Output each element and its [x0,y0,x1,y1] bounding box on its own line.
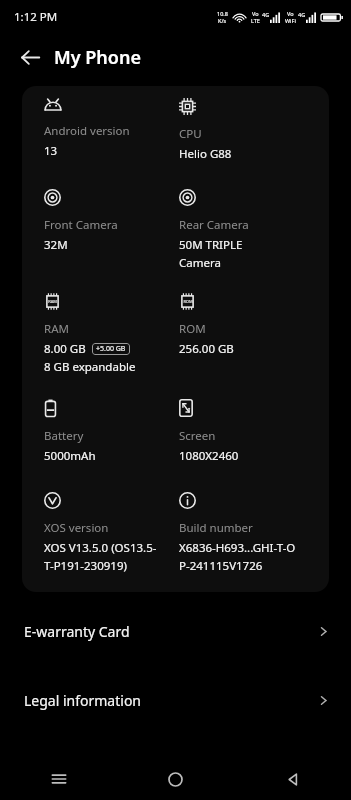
staticText: Front Camera [44,217,118,233]
staticText: Vo [287,10,294,17]
staticText: LTE [251,17,260,24]
staticText: P-241115V1726 [179,558,263,574]
staticText: Helio G88 [179,146,232,162]
staticText: 1:12 PM [14,9,58,25]
staticText: T-P191-230919) [44,558,127,574]
staticText: 13 [44,143,58,159]
staticText: XOS version [44,520,109,536]
staticText: Vo [252,10,259,17]
staticText: Build number [179,520,253,536]
staticText: 1080X2460 [179,448,239,464]
staticText: Legal information [24,691,142,710]
button[interactable]: Legal information [0,683,351,717]
staticText: Android version [44,123,130,139]
staticText: +5.00 GB [96,344,126,354]
staticText: 8 GB expandable [44,359,136,375]
staticText: RAM [48,299,57,304]
staticText: Screen [179,428,216,444]
staticText: K/s [218,17,227,24]
staticText: ROM [179,321,206,337]
staticText: 4G [298,11,306,18]
staticText: E-warranty Card [24,622,130,641]
staticText: RAM [44,321,69,337]
staticText: My Phone [54,45,141,70]
button[interactable]: Back [234,758,351,800]
button[interactable]: Home [117,758,234,800]
staticText: Battery [44,428,84,444]
staticText: 10.8 [217,10,228,17]
staticText: X6836-H693...GHI-T-O [179,540,296,556]
staticText: Rear Camera [179,217,249,233]
staticText: 50M TRIPLE [179,237,243,253]
staticText: 32M [44,237,68,253]
staticText: 8.00 GB [44,341,86,357]
staticText: 5000mAh [44,448,96,464]
staticText: 4G [262,11,270,18]
staticText: ROM [183,299,193,304]
staticText: WiFi [285,17,296,24]
button[interactable]: Recents [0,758,117,800]
staticText: 256.00 GB [179,341,234,357]
button[interactable]: Back [10,37,50,77]
staticText: CPU [179,126,202,142]
staticText: Camera [179,255,221,271]
staticText: XOS V13.5.0 (OS13.5- [44,540,157,556]
button[interactable]: E-warranty Card [0,614,351,648]
